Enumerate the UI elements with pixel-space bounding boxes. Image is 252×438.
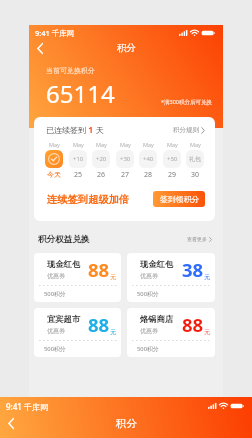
button[interactable]: 现金红包 xyxy=(127,253,215,302)
button[interactable]: 签到领积分 xyxy=(153,191,205,207)
staticText: +30 xyxy=(120,155,131,163)
button[interactable]: 宜宾超市 xyxy=(34,308,121,357)
staticText: 连续签到超级加倍 xyxy=(47,193,130,206)
staticText: 38 xyxy=(182,257,204,282)
staticText: May xyxy=(96,141,107,148)
staticText: 已连续签到 xyxy=(46,125,86,135)
staticText: 88 xyxy=(88,257,110,282)
staticText: 今天 xyxy=(47,170,61,179)
staticText: 现金红包 xyxy=(47,259,81,269)
staticText: 1 xyxy=(86,124,96,136)
staticText: 27 xyxy=(121,170,130,180)
staticText: 天 xyxy=(96,125,104,135)
staticText: 65114 xyxy=(46,77,115,110)
staticText: 元 xyxy=(110,273,117,281)
staticText: 优惠券 xyxy=(47,327,65,335)
staticText: +20 xyxy=(96,155,107,163)
staticText: 礼包 xyxy=(189,155,201,163)
staticText: 500积分 xyxy=(44,345,66,353)
staticText: 签到领积分 xyxy=(160,194,199,204)
staticText: 28 xyxy=(144,170,153,180)
staticText: May xyxy=(190,141,201,148)
button[interactable]: 积分规则 xyxy=(173,126,205,134)
staticText: 500积分 xyxy=(137,290,159,298)
staticText: 26 xyxy=(97,170,106,180)
button[interactable]: 礼包 xyxy=(186,150,204,168)
button[interactable]: +30 xyxy=(116,150,134,168)
staticText: *满300积分后可兑换 xyxy=(161,98,212,106)
staticText: 宜宾超市 xyxy=(47,314,81,324)
staticText: May xyxy=(73,141,84,148)
staticText: 元 xyxy=(110,328,117,336)
staticText: +10 xyxy=(73,155,84,163)
staticText: 元 xyxy=(204,273,211,281)
staticText: +50 xyxy=(167,155,178,163)
staticText: 88 xyxy=(182,312,204,337)
staticText: 积分规则 xyxy=(173,126,199,134)
button[interactable]: Back xyxy=(30,38,50,58)
staticText: 88 xyxy=(88,312,110,337)
staticText: May xyxy=(143,141,154,148)
staticText: +40 xyxy=(143,155,154,163)
button[interactable]: +10 xyxy=(69,150,87,168)
button[interactable]: Back xyxy=(1,413,21,433)
staticText: 30 xyxy=(191,170,200,180)
staticText: 9:41 千库网 xyxy=(35,28,75,38)
staticText: May xyxy=(49,141,60,148)
staticText: May xyxy=(167,141,178,148)
staticText: 现金红包 xyxy=(140,259,174,269)
staticText: 25 xyxy=(74,170,83,180)
button[interactable]: +40 xyxy=(139,150,157,168)
staticText: 优惠券 xyxy=(47,272,65,280)
staticText: 查看更多 xyxy=(187,236,207,242)
staticText: 500积分 xyxy=(44,290,66,298)
button[interactable]: 现金红包 xyxy=(34,253,121,302)
staticText: 元 xyxy=(204,328,211,336)
button[interactable]: Signed in today xyxy=(45,150,63,168)
staticText: 500积分 xyxy=(137,345,159,353)
staticText: 当前可兑换积分 xyxy=(46,66,95,75)
button[interactable]: 烙锅商店 xyxy=(127,308,215,357)
staticText: 优惠券 xyxy=(140,272,158,280)
staticText: 9:41 千库网 xyxy=(6,401,48,412)
staticText: 29 xyxy=(168,170,177,180)
staticText: May xyxy=(120,141,131,148)
staticText: 积分权益兑换 xyxy=(38,234,90,245)
staticText: 积分 xyxy=(116,417,137,430)
staticText: 优惠券 xyxy=(140,327,158,335)
staticText: 积分 xyxy=(117,42,136,54)
staticText: 烙锅商店 xyxy=(140,314,174,324)
button[interactable]: +50 xyxy=(163,150,181,168)
button[interactable]: +20 xyxy=(92,150,110,168)
button[interactable]: 查看更多 xyxy=(187,236,212,242)
